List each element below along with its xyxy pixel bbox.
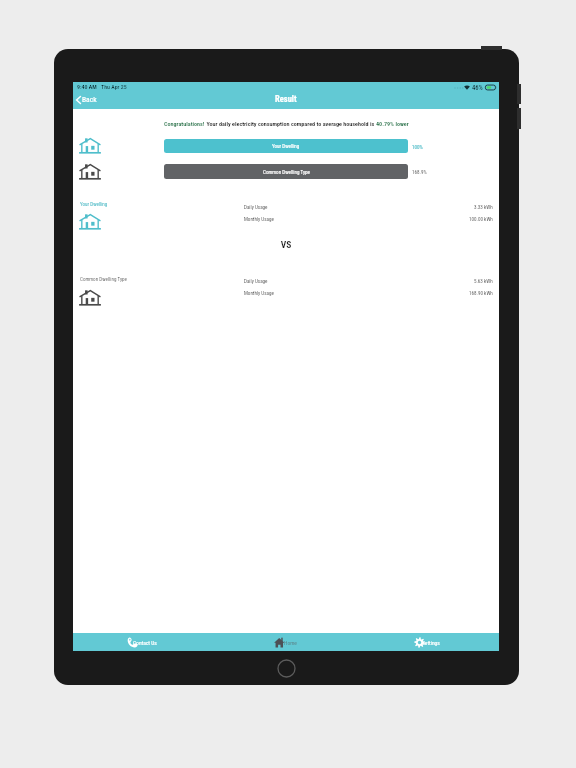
staticText: Monthly Usage (244, 216, 274, 222)
staticText: Daily Usage (244, 278, 268, 284)
button[interactable]: Home (215, 633, 357, 651)
staticText: Common Dwelling Type (263, 169, 310, 175)
staticText: Home (284, 640, 297, 646)
button[interactable]: Back (73, 92, 102, 107)
staticText: Settings (422, 640, 440, 646)
staticText: 100% (412, 144, 423, 150)
staticText: Result (275, 94, 297, 104)
button[interactable]: Your Dwelling (164, 139, 408, 153)
staticText: Your Dwelling (80, 201, 108, 207)
staticText: Monthly Usage (244, 290, 274, 296)
staticText: 40.79% lower (376, 120, 409, 127)
staticText: 100.00 kWh (469, 216, 493, 222)
button[interactable]: Contact Us (73, 633, 215, 651)
staticText: 9:40 AM (77, 84, 97, 91)
button[interactable]: Common Dwelling Type (164, 164, 408, 179)
staticText: Contact Us (133, 640, 157, 646)
staticText: Daily Usage (244, 204, 268, 210)
staticText: 168.90 kWh (469, 290, 493, 296)
button[interactable]: Settings (357, 633, 499, 651)
staticText: VS (73, 239, 499, 250)
staticText: 46% (472, 84, 483, 92)
staticText: Congratulations! (164, 120, 205, 127)
staticText: Your daily electricity consumption compa… (205, 120, 376, 127)
staticText: Common Dwelling Type (80, 276, 127, 282)
staticText: Thu Apr 25 (101, 84, 127, 91)
staticText: 3.33 kWh (474, 204, 493, 210)
staticText: Your Dwelling (272, 143, 300, 149)
staticText: 5.63 kWh (474, 278, 493, 284)
staticText: Back (82, 95, 97, 104)
staticText: 168.9% (412, 169, 427, 175)
